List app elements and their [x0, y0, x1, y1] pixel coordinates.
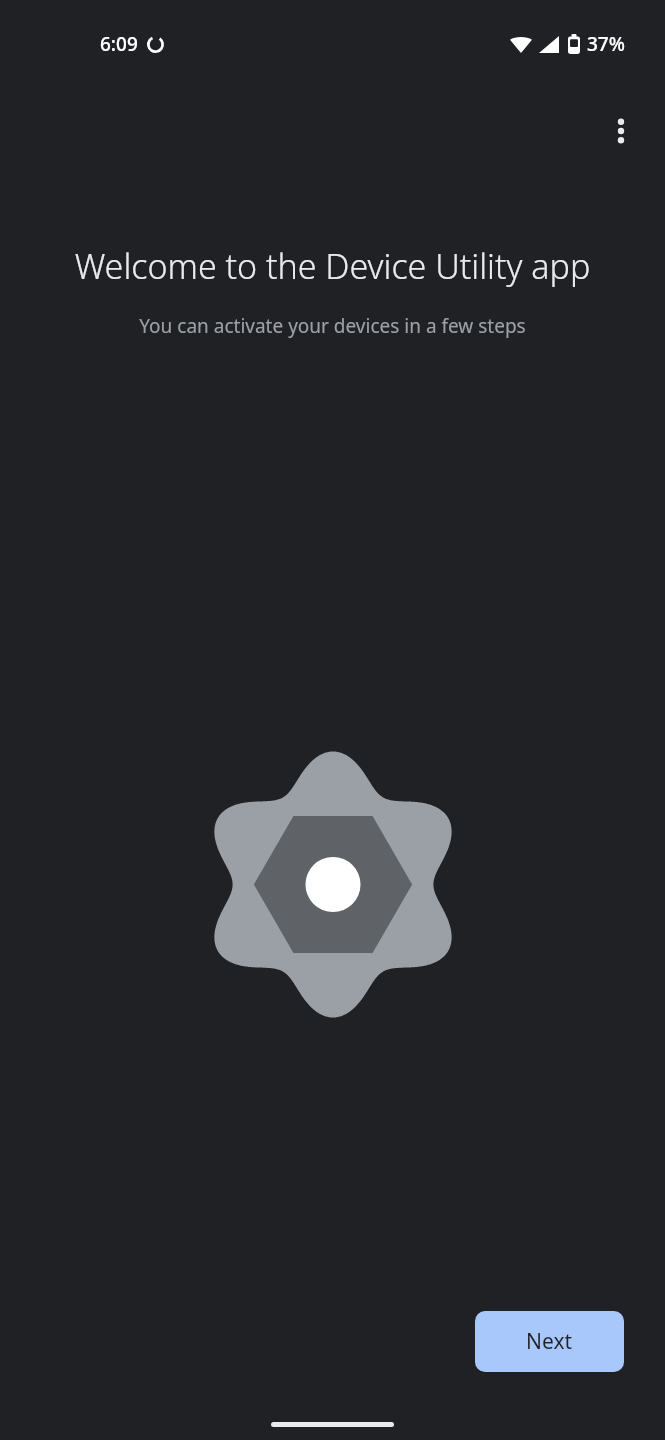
staticText: Welcome to the Device Utility app — [42, 243, 623, 289]
staticText: 37% — [587, 31, 625, 57]
staticText: You can activate your devices in a few s… — [30, 313, 635, 339]
button[interactable]: Next — [475, 1311, 624, 1372]
button[interactable]: More options — [597, 107, 645, 155]
staticText: 6:09 — [100, 31, 138, 57]
staticText: Next — [526, 1327, 573, 1356]
